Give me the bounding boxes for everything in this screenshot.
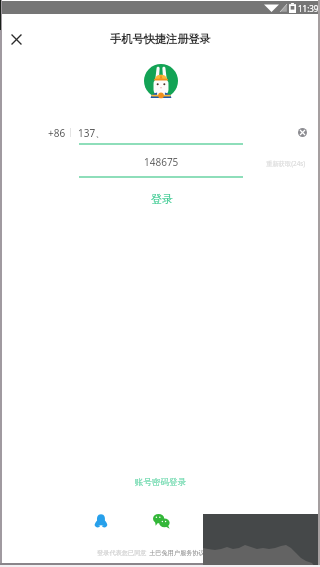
button[interactable]: 账号密码登录 — [119, 474, 202, 491]
staticText: 148675 — [144, 155, 179, 169]
button[interactable]: Clear — [298, 128, 307, 137]
button[interactable]: QQ login — [89, 509, 113, 533]
staticText: 重新获取(24s) — [266, 159, 306, 168]
staticText: 登录代表您已同意 — [97, 549, 147, 557]
staticText: 手机号快捷注册登录 — [110, 32, 211, 46]
staticText: 土巴兔用户服务协议 — [149, 549, 205, 557]
button[interactable]: WeChat login — [149, 509, 173, 533]
staticText: 登录 — [151, 192, 173, 206]
button[interactable]: 登录 — [131, 189, 193, 209]
button[interactable]: Close — [8, 31, 24, 47]
staticText: 11:39 — [298, 3, 319, 14]
button[interactable]: 重新获取(24s) — [266, 159, 306, 168]
staticText: 137、 — [78, 126, 106, 140]
staticText: +86 — [48, 126, 66, 140]
staticText: 账号密码登录 — [135, 477, 186, 488]
